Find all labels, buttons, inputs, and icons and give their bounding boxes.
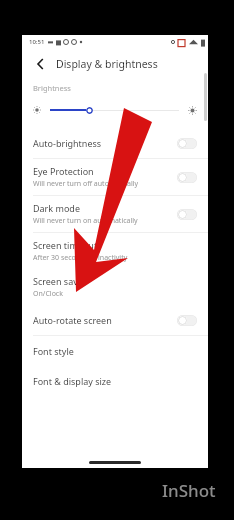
- button[interactable]: Toggle: [177, 172, 197, 183]
- button[interactable]: Dark mode: [22, 196, 208, 232]
- staticText: Screen saver: [33, 275, 87, 287]
- staticText: Screen timeout: [33, 239, 98, 251]
- button[interactable]: Font & display size: [22, 366, 208, 396]
- staticText: Dark mode: [33, 202, 80, 214]
- button[interactable]: Font style: [22, 336, 208, 366]
- staticText: Eye Protection: [33, 165, 94, 177]
- button[interactable]: Toggle: [177, 138, 197, 149]
- button[interactable]: Screen timeout: [22, 233, 208, 269]
- staticText: Display & brightness: [56, 57, 158, 71]
- staticText: Font style: [33, 345, 74, 357]
- button[interactable]: Toggle: [177, 209, 197, 220]
- button[interactable]: Auto-rotate screen: [22, 305, 208, 335]
- button[interactable]: Toggle: [177, 315, 197, 326]
- staticText: Auto-rotate screen: [33, 314, 112, 326]
- staticText: InShot: [162, 479, 216, 502]
- staticText: After 30 seconds of inactivity: [33, 253, 128, 263]
- staticText: Will never turn off automatically: [33, 179, 139, 189]
- button[interactable]: Eye Protection: [22, 159, 208, 195]
- button[interactable]: Screen saver: [22, 269, 208, 305]
- staticText: Font & display size: [33, 375, 112, 387]
- button[interactable]: Back: [32, 55, 50, 73]
- staticText: On/Clock: [33, 289, 63, 299]
- button[interactable]: Auto-brightness: [22, 128, 208, 158]
- staticText: 10:51: [29, 38, 45, 46]
- staticText: Will never turn on automatically: [33, 216, 138, 226]
- staticText: Auto-brightness: [33, 137, 102, 149]
- staticText: Brightness: [33, 83, 71, 93]
